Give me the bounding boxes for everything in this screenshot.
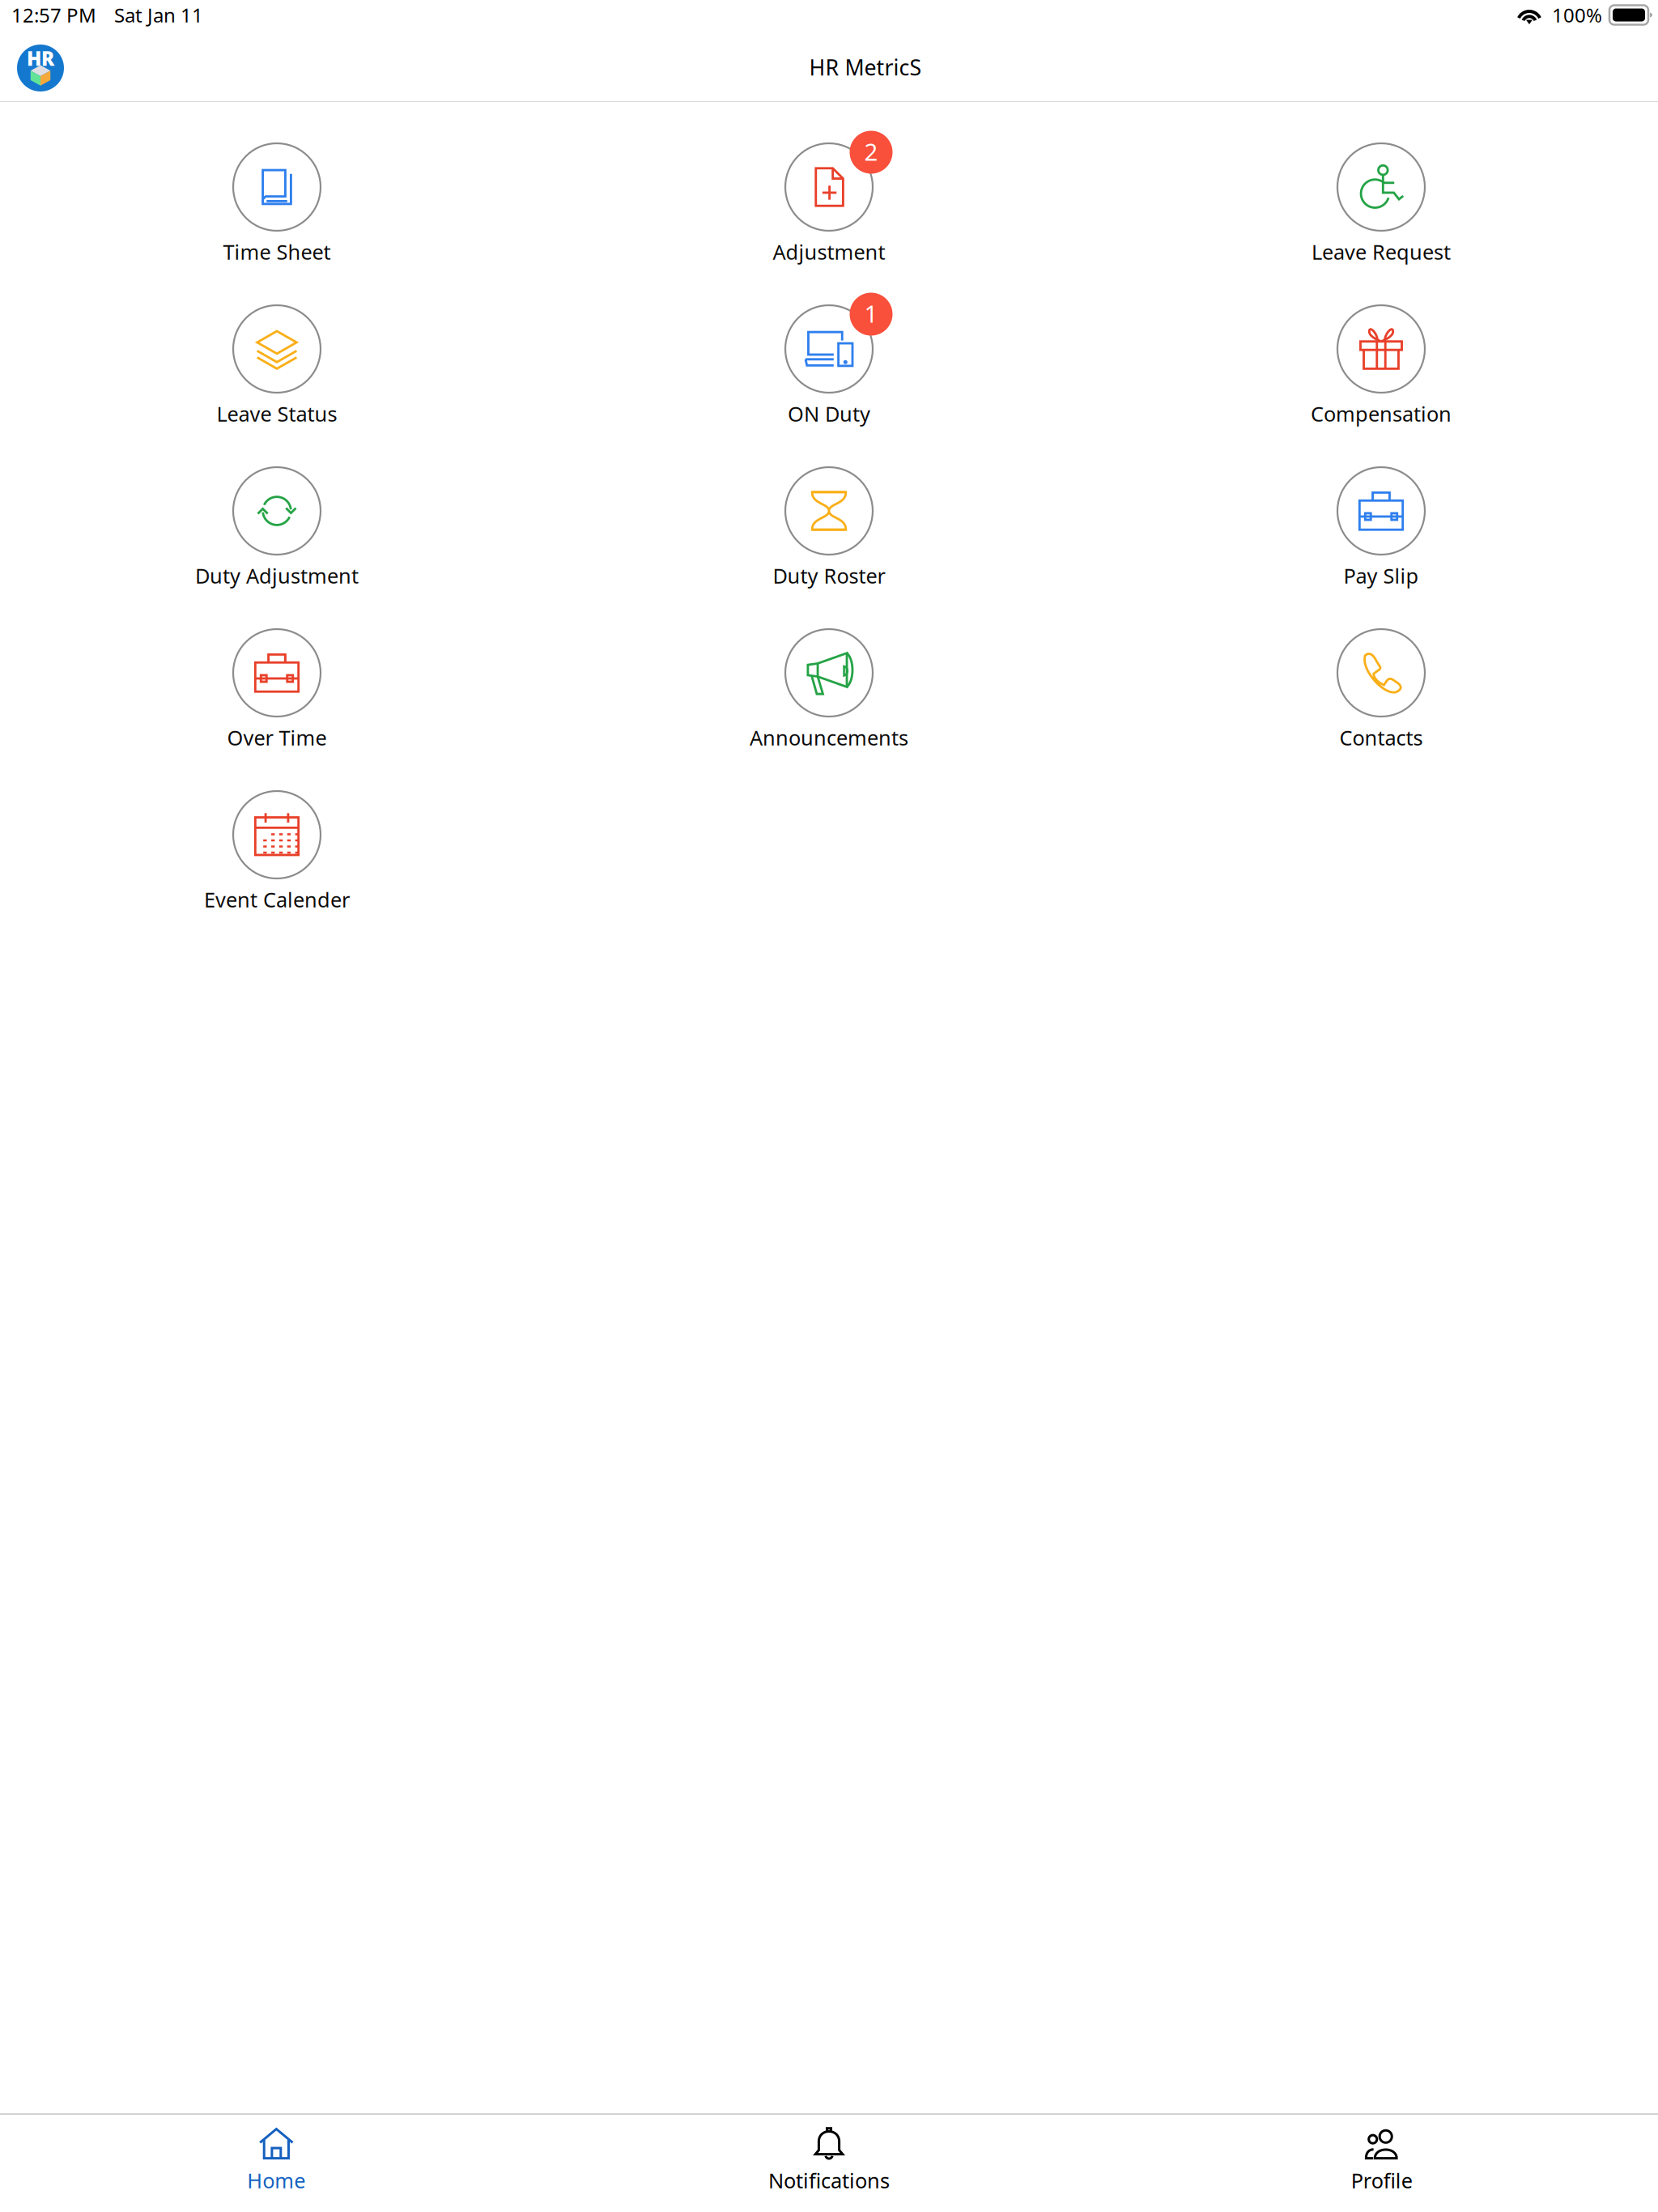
staticText: 12:57 PM: [11, 2, 96, 28]
staticText: 1: [864, 298, 878, 329]
button[interactable]: Leave Status: [1, 264, 553, 426]
staticText: Duty Adjustment: [195, 562, 359, 589]
button[interactable]: Compensation: [1105, 264, 1657, 426]
staticText: HR: [27, 45, 54, 71]
staticText: Sat Jan 11: [114, 2, 203, 28]
staticText: HR MetricS: [809, 53, 922, 82]
staticText: ON Duty: [788, 400, 870, 427]
button[interactable]: Announcements: [553, 588, 1105, 750]
button[interactable]: Home: [0, 2115, 553, 2212]
staticText: Over Time: [227, 724, 327, 751]
button[interactable]: 2: [553, 102, 1105, 264]
staticText: Event Calender: [204, 886, 350, 913]
button[interactable]: Profile: [1105, 2115, 1658, 2212]
staticText: Announcements: [750, 724, 908, 751]
button[interactable]: Notifications: [553, 2115, 1105, 2212]
staticText: Adjustment: [773, 238, 885, 265]
button[interactable]: Leave Request: [1105, 102, 1657, 264]
staticText: Contacts: [1339, 724, 1423, 751]
staticText: 100%: [1552, 2, 1602, 28]
button[interactable]: 1: [553, 264, 1105, 426]
staticText: Notifications: [768, 2167, 890, 2194]
staticText: Compensation: [1311, 400, 1452, 427]
staticText: Leave Status: [217, 400, 337, 427]
button[interactable]: Time Sheet: [1, 102, 553, 264]
button[interactable]: Over Time: [1, 588, 553, 750]
button[interactable]: Pay Slip: [1105, 426, 1657, 588]
staticText: Time Sheet: [223, 238, 331, 265]
button[interactable]: Contacts: [1105, 588, 1657, 750]
staticText: Leave Request: [1312, 238, 1451, 265]
button[interactable]: Event Calender: [1, 750, 553, 912]
staticText: 2: [864, 136, 878, 167]
button[interactable]: Duty Roster: [553, 426, 1105, 588]
staticText: Duty Roster: [773, 562, 885, 589]
button[interactable]: HR MetricS home: [0, 42, 72, 89]
staticText: Pay Slip: [1343, 562, 1419, 589]
button[interactable]: Duty Adjustment: [1, 426, 553, 588]
staticText: Home: [247, 2167, 305, 2194]
staticText: Profile: [1351, 2167, 1412, 2194]
